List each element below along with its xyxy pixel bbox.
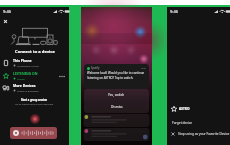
button[interactable] — [10, 127, 57, 139]
button[interactable]: Spotify — [84, 64, 149, 89]
button[interactable]: This Phone — [0, 56, 69, 69]
staticText: 9:46 — [3, 9, 11, 14]
staticText: Forget device — [172, 121, 193, 125]
staticText: Start a group session — [21, 98, 48, 101]
button[interactable]: Forget device — [167, 118, 230, 127]
staticText: 9:46 — [170, 9, 178, 14]
staticText: Stop using as your Favorite Device — [178, 132, 230, 136]
button[interactable]: More Devices — [0, 81, 69, 94]
staticText: Spotify — [91, 66, 100, 70]
staticText: Let all friends listen at your own pace — [15, 103, 54, 106]
staticText: ASTRO — [179, 107, 190, 111]
button[interactable]: Start a group session — [0, 98, 69, 106]
staticText: now — [141, 67, 146, 70]
button[interactable]: Dismiss — [84, 101, 149, 113]
button[interactable]: Close — [2, 18, 9, 25]
staticText: ASTRO — [17, 77, 25, 80]
button[interactable]: More options — [58, 72, 66, 80]
staticText: This Phone — [13, 58, 32, 63]
staticText: LISTENING ON — [13, 71, 38, 76]
staticText: Dismiss — [111, 105, 123, 109]
staticText: Airplay & Bluetooth — [17, 89, 39, 92]
staticText: Chromecast ASTRO — [17, 64, 39, 67]
staticText: Yes, switch — [108, 93, 125, 97]
staticText: Welcome back! Would you like to continue… — [87, 71, 146, 79]
button[interactable]: LISTENING ON — [0, 69, 69, 82]
staticText: Connect to a device — [15, 49, 55, 55]
button[interactable]: Stop using as your Favorite Device — [167, 129, 230, 138]
button[interactable]: Yes, switch — [84, 89, 149, 101]
staticText: More Devices — [13, 83, 36, 88]
